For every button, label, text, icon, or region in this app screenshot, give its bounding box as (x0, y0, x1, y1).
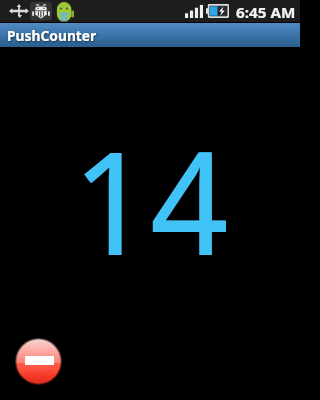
staticText: 14 (72, 102, 228, 297)
staticText: 6:45 AM (236, 3, 296, 22)
button[interactable]: Decrement counter (15, 338, 62, 385)
button[interactable]: Increment counter (0, 47, 300, 400)
staticText: 14 (73, 102, 229, 297)
staticText: PushCounter (7, 25, 97, 45)
